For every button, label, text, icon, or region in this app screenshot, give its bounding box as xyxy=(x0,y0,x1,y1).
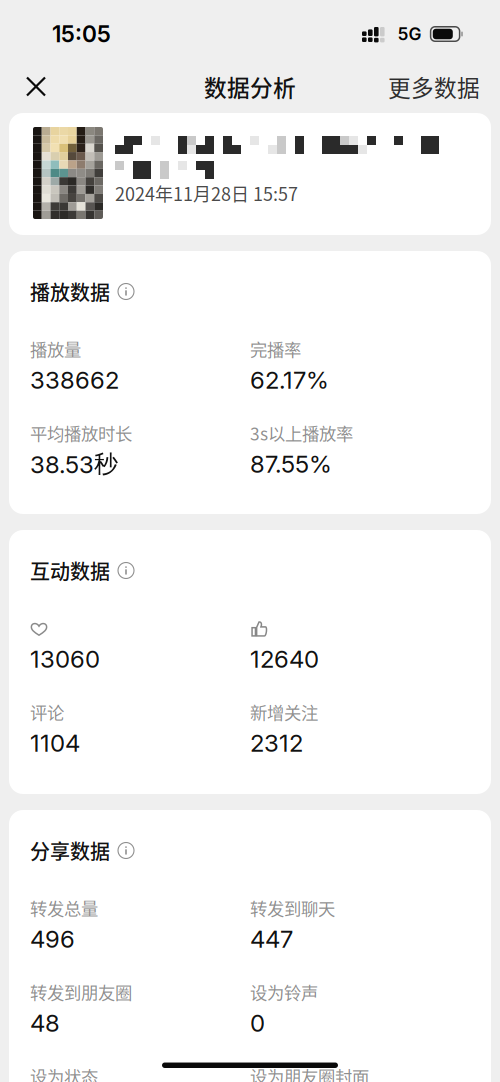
staticText: 447 xyxy=(250,924,293,953)
staticText: 5G xyxy=(398,23,422,44)
staticText: 0 xyxy=(250,1008,265,1037)
staticText: 播放数据 xyxy=(30,277,110,306)
staticText: 13060 xyxy=(30,644,100,673)
staticText: 3s以上播放率 xyxy=(250,420,353,446)
staticText: 62.17% xyxy=(250,365,329,394)
staticText: 更多数据 xyxy=(388,70,480,103)
staticText: 338662 xyxy=(30,365,119,394)
button[interactable]: 更多数据 xyxy=(388,64,480,108)
staticText: 转发到聊天 xyxy=(250,895,335,921)
staticText: 12640 xyxy=(250,644,319,673)
staticText: 新增关注 xyxy=(250,699,318,725)
staticText: 分享数据 xyxy=(30,836,110,865)
staticText: 2312 xyxy=(250,728,303,757)
staticText: 转发总量 xyxy=(30,895,98,921)
staticText: 数据分析 xyxy=(204,70,296,103)
staticText: 设为朋友圈封面 xyxy=(250,1063,369,1082)
staticText: 496 xyxy=(30,924,75,953)
staticText: 播放量 xyxy=(30,336,81,362)
button[interactable]: Close xyxy=(12,64,60,108)
staticText: 设为铃声 xyxy=(250,979,318,1005)
staticText: 平均播放时长 xyxy=(30,420,132,446)
staticText: 48 xyxy=(30,1008,60,1037)
staticText: 87.55% xyxy=(250,449,332,478)
staticText: 互动数据 xyxy=(30,556,110,585)
staticText: 完播率 xyxy=(250,336,301,362)
staticText: 1104 xyxy=(30,728,80,757)
staticText: 设为状态 xyxy=(30,1063,98,1082)
staticText: 15:05 xyxy=(52,20,111,48)
staticText: 2024年11月28日 15:57 xyxy=(115,180,298,206)
staticText: 评论 xyxy=(30,699,64,725)
staticText: 转发到朋友圈 xyxy=(30,979,132,1005)
staticText: 38.53秒 xyxy=(30,449,118,479)
